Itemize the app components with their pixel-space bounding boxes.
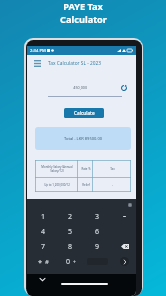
button[interactable]: 9 — [84, 239, 111, 254]
button[interactable]: Backspace — [111, 239, 136, 254]
button[interactable]: Enter — [111, 254, 136, 269]
staticText: Tax Calculator SL - 2023 — [48, 60, 101, 67]
staticText: # — [45, 258, 49, 266]
staticText: 6 — [95, 227, 100, 237]
button[interactable]: Relief — [78, 178, 93, 192]
button[interactable]: Tax — [93, 160, 131, 178]
staticText: - — [112, 183, 113, 187]
staticText: Calculate — [74, 110, 95, 116]
staticText: Calculator — [60, 13, 107, 26]
button[interactable]: Calculate — [64, 108, 104, 118]
button[interactable]: 2 — [57, 209, 84, 224]
button[interactable]: 0 — [57, 254, 84, 269]
staticText: PAYE Tax — [63, 0, 103, 13]
button[interactable]: Open navigation menu — [27, 55, 136, 71]
button[interactable]: Total - LKR 89500.00 — [35, 127, 131, 150]
staticText: 1 — [41, 212, 46, 222]
staticText: 8 — [68, 242, 73, 252]
staticText: 5 — [68, 227, 73, 237]
button[interactable]: 8 — [57, 239, 84, 254]
button[interactable] — [111, 209, 136, 224]
button[interactable]: Monthly Salary (Annual Salary/12) — [35, 160, 78, 178]
button[interactable]: Keyboard settings — [126, 201, 133, 208]
other: Backspace — [120, 242, 129, 251]
button[interactable]: 5 — [57, 224, 84, 239]
button[interactable]: 6 — [84, 224, 111, 239]
button[interactable]: Up to 1,200,000/12 — [35, 178, 78, 192]
staticText: Tax — [110, 167, 115, 171]
staticText: Relief — [82, 183, 90, 187]
button[interactable]: Rate % — [78, 160, 93, 178]
staticText: Up to 1,200,000/12 — [44, 183, 70, 187]
staticText: 450,000 — [48, 85, 87, 90]
staticText: 4 — [41, 227, 46, 237]
button[interactable]: - — [93, 178, 131, 192]
button[interactable]: 1 — [29, 209, 57, 224]
staticText: 2 — [68, 212, 73, 222]
button[interactable]: Space — [84, 254, 111, 269]
button[interactable]: * — [29, 254, 57, 269]
staticText: 9 — [95, 242, 100, 252]
button[interactable]: Reset — [119, 83, 129, 93]
staticText: 0 — [66, 257, 71, 267]
other: Enter — [120, 257, 129, 266]
button[interactable]: 3 — [84, 209, 111, 224]
button[interactable]: Back — [38, 275, 46, 283]
button[interactable]: 4 — [29, 224, 57, 239]
button[interactable]: Open navigation menu — [32, 58, 42, 68]
staticText: Monthly Salary (Annual Salary/12) — [41, 165, 73, 173]
staticText: 7 — [41, 242, 46, 252]
staticText: + — [73, 259, 76, 266]
staticText: 2:34 PM — [30, 48, 46, 54]
staticText: 3 — [95, 212, 100, 222]
staticText: Rate % — [81, 167, 91, 171]
staticText: Total - LKR 89500.00 — [64, 136, 103, 142]
button[interactable]: 7 — [29, 239, 57, 254]
staticText: * — [38, 257, 43, 267]
